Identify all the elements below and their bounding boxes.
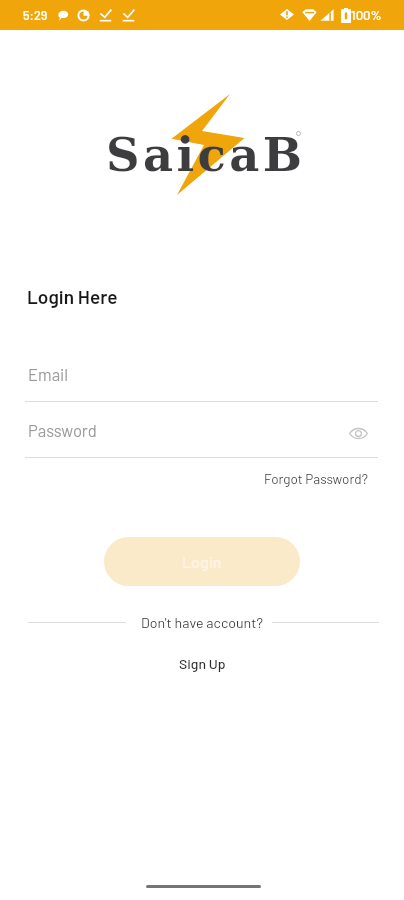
- staticText: Sign Up: [179, 655, 226, 672]
- staticText: SaicaB: [106, 127, 306, 182]
- staticText: Don't have account?: [141, 614, 263, 631]
- button[interactable]: Show password: [344, 419, 372, 447]
- button[interactable]: Login: [104, 537, 300, 586]
- staticText: Login Here: [27, 285, 118, 308]
- button[interactable]: Sign Up: [171, 652, 234, 675]
- staticText: Forgot Password?: [264, 470, 368, 486]
- staticText: Email: [28, 364, 69, 384]
- button[interactable]: Forgot Password?: [264, 467, 368, 489]
- staticText: 100%: [351, 7, 382, 23]
- staticText: Login: [182, 552, 222, 571]
- staticText: Password: [28, 420, 97, 440]
- staticText: 5:29: [23, 7, 48, 22]
